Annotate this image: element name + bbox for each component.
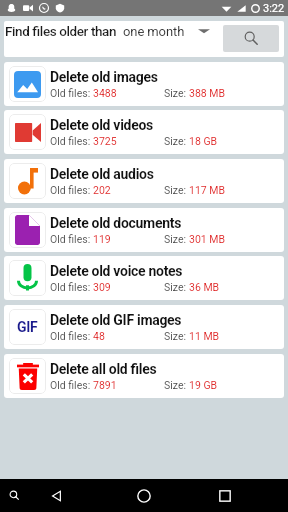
staticText: Size: <box>164 281 189 293</box>
staticText: Delete old voice notes <box>50 263 183 279</box>
staticText: 36 MB <box>189 281 220 293</box>
button[interactable]: Delete old audios <box>4 159 284 203</box>
button[interactable]: Search <box>0 479 28 512</box>
button[interactable]: one month <box>123 21 210 49</box>
staticText: 19 GB <box>189 379 218 391</box>
button[interactable]: Delete old documents <box>4 208 284 252</box>
button[interactable]: Delete all old files <box>4 354 284 398</box>
staticText: Find files older than <box>5 23 117 39</box>
staticText: 18 GB <box>189 135 218 147</box>
staticText: Delete old videos <box>50 117 153 133</box>
staticText: Old files: <box>50 135 93 147</box>
staticText: Size: <box>164 379 189 391</box>
button[interactable]: Search <box>223 25 279 52</box>
button[interactable]: Delete old images <box>4 62 284 106</box>
staticText: Size: <box>164 87 189 99</box>
staticText: 7891 <box>93 379 117 391</box>
staticText: one month <box>123 24 185 39</box>
staticText: Old files: <box>50 87 93 99</box>
button[interactable]: GIF <box>4 305 284 349</box>
staticText: Delete old GIF images <box>50 312 182 328</box>
staticText: Old files: <box>50 233 93 245</box>
staticText: Size: <box>164 135 189 147</box>
staticText: 119 <box>93 233 111 245</box>
staticText: 3725 <box>93 135 117 147</box>
button[interactable]: Delete old voice notes <box>4 256 284 300</box>
staticText: 3:22 <box>263 2 285 15</box>
staticText: 388 MB <box>189 87 226 99</box>
staticText: Delete old audios <box>50 166 154 182</box>
button[interactable]: Delete old videos <box>4 110 284 154</box>
staticText: Old files: <box>50 330 93 342</box>
staticText: 3488 <box>93 87 117 99</box>
staticText: Delete old documents <box>50 215 182 231</box>
staticText: 309 <box>93 281 111 293</box>
button[interactable]: Recents <box>207 479 243 512</box>
staticText: 301 MB <box>189 233 226 245</box>
staticText: 117 MB <box>189 184 226 196</box>
button[interactable]: Home <box>126 479 162 512</box>
staticText: Delete old images <box>50 69 158 85</box>
staticText: Size: <box>164 233 189 245</box>
staticText: Size: <box>164 330 189 342</box>
staticText: 48 <box>93 330 105 342</box>
staticText: Old files: <box>50 184 93 196</box>
staticText: 11 MB <box>189 330 220 342</box>
staticText: Size: <box>164 184 189 196</box>
staticText: GIF <box>17 319 38 335</box>
button[interactable]: Back <box>39 479 75 512</box>
staticText: Delete all old files <box>50 361 157 377</box>
staticText: Old files: <box>50 281 93 293</box>
staticText: 202 <box>93 184 111 196</box>
staticText: Old files: <box>50 379 93 391</box>
